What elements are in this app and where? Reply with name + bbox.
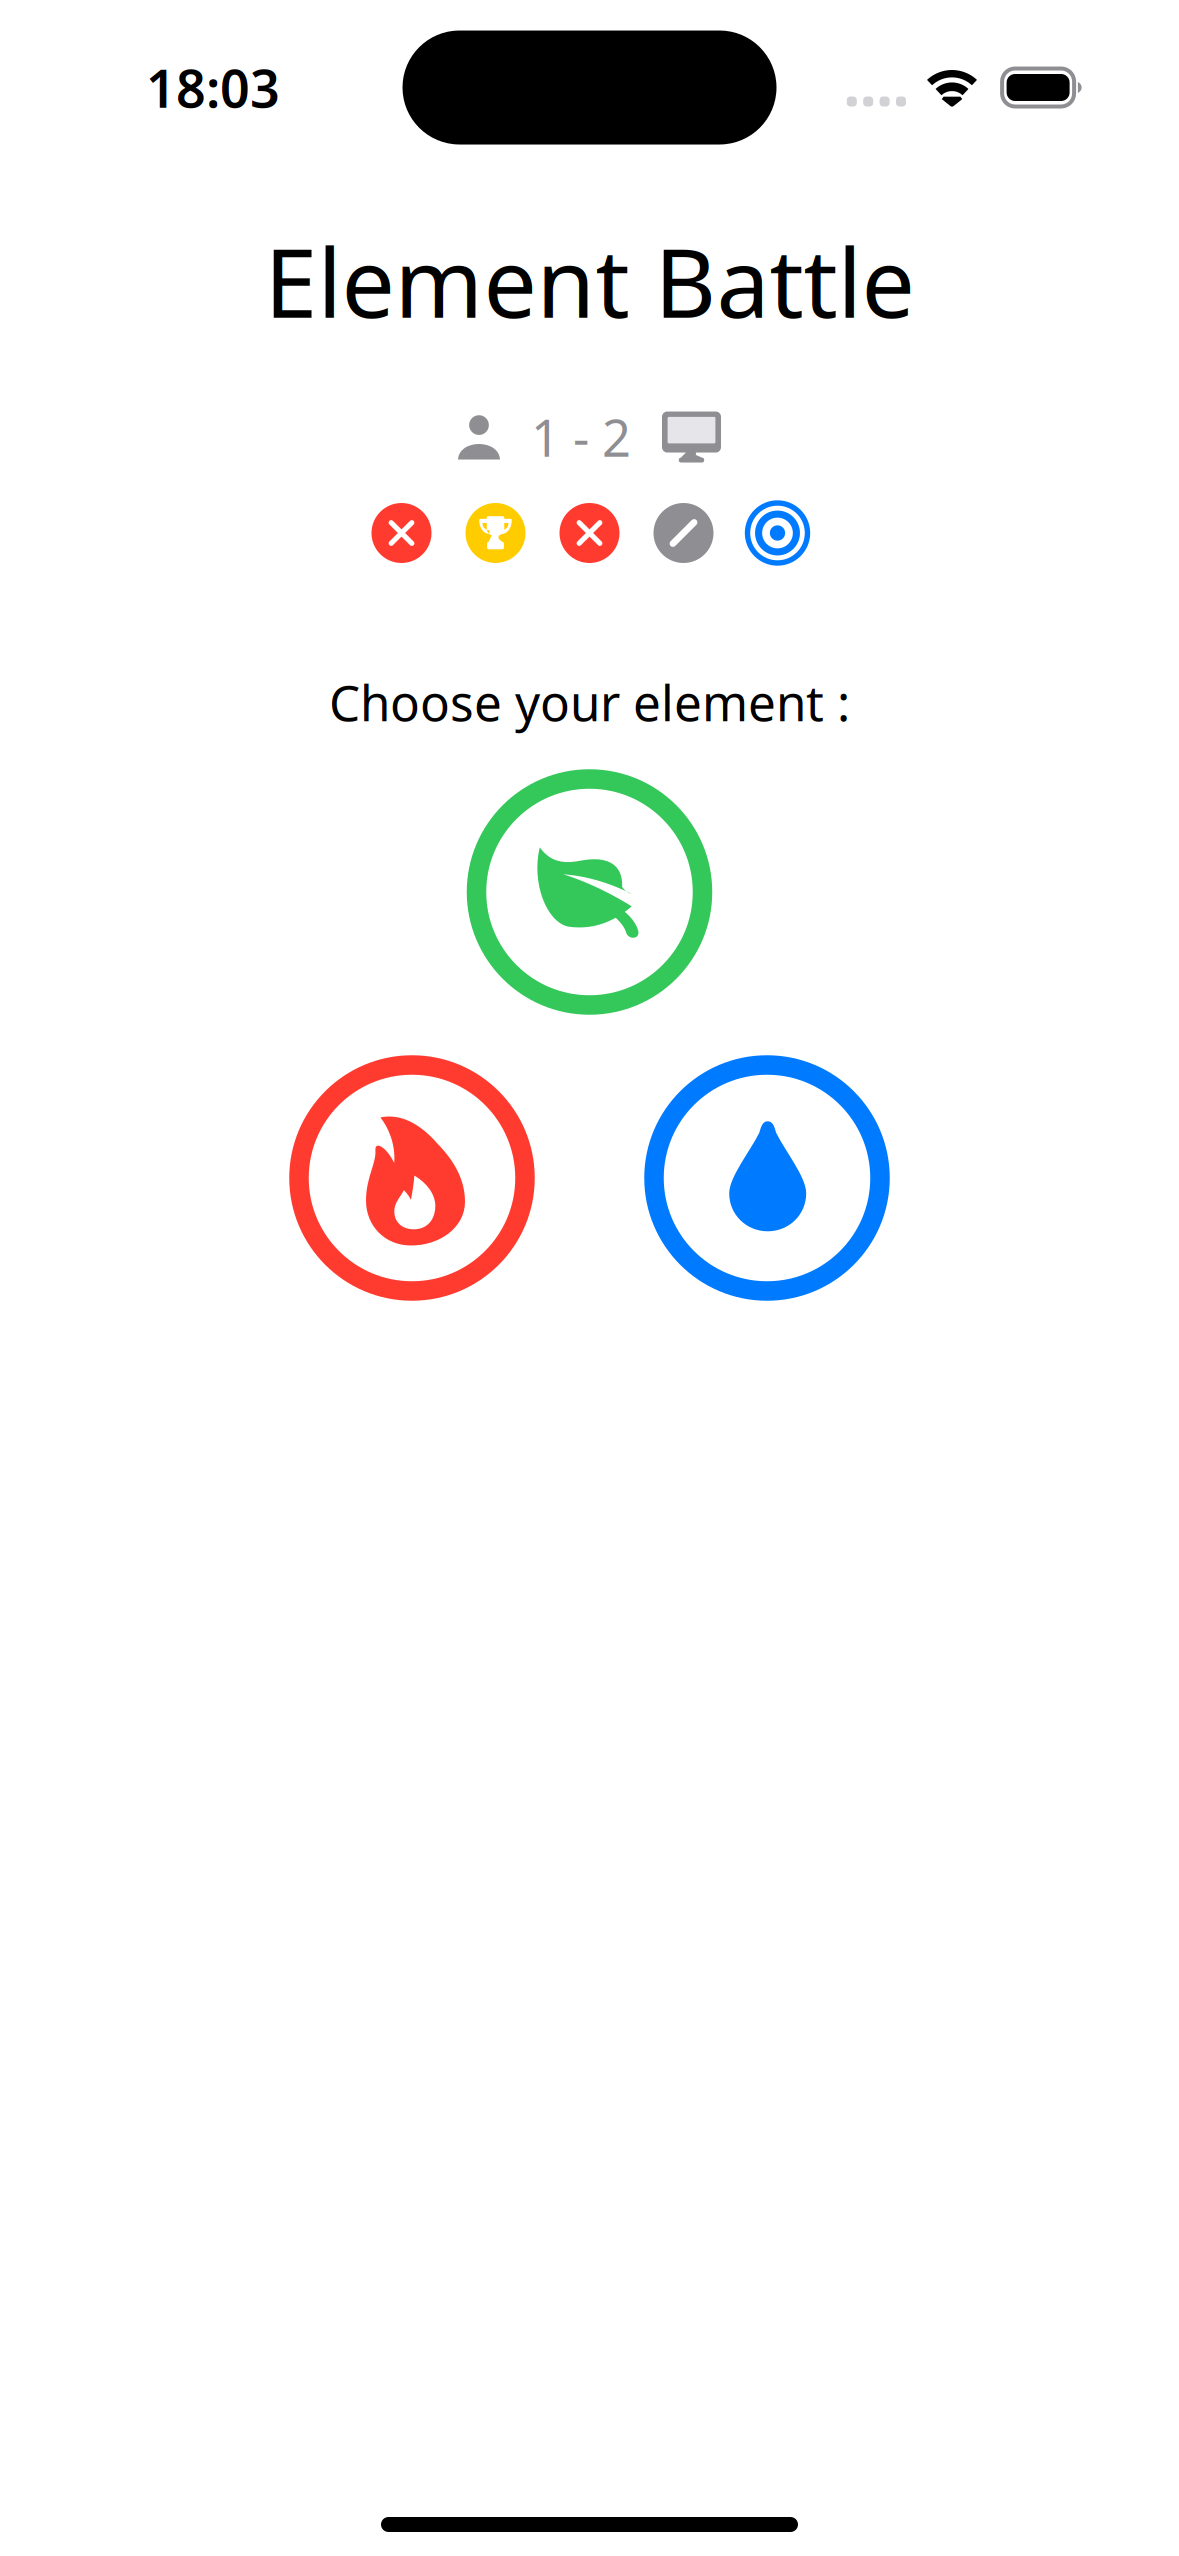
- staticText: Element Battle: [264, 218, 914, 344]
- button[interactable]: Leaf: [476, 779, 702, 1005]
- staticText: Choose your element :: [329, 669, 850, 735]
- staticText: 1 - 2: [531, 403, 631, 471]
- button[interactable]: Fire: [299, 1065, 525, 1291]
- button[interactable]: Water: [654, 1065, 880, 1291]
- staticText: 18:03: [146, 53, 280, 122]
